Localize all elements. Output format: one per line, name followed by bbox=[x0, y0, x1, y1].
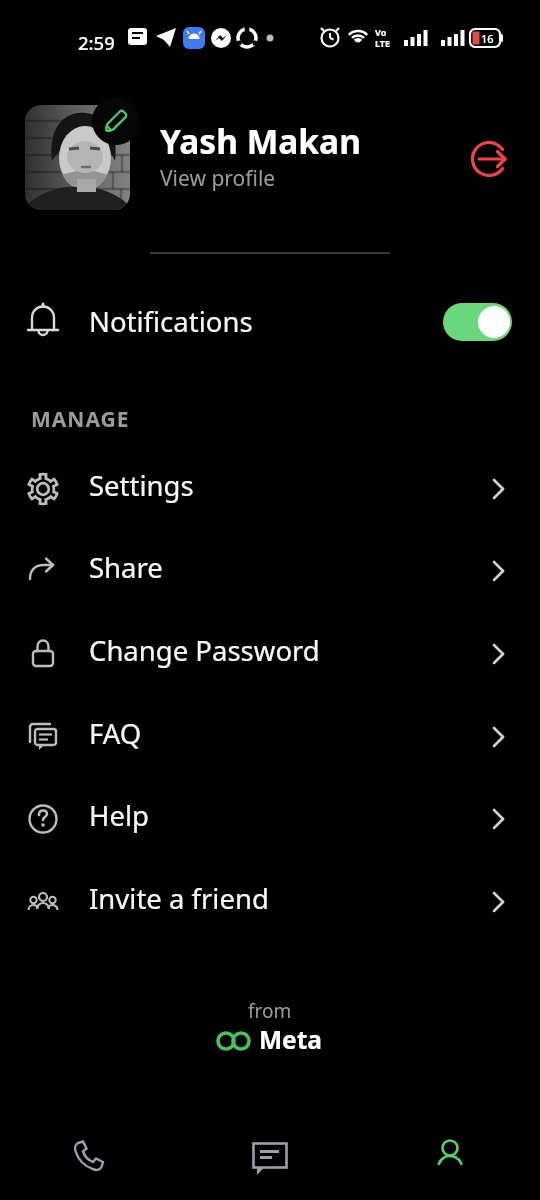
staticText: Invite a friend bbox=[89, 880, 269, 917]
staticText: Vo LTE bbox=[375, 26, 391, 49]
staticText: Change Password bbox=[89, 632, 320, 669]
staticText: View profile bbox=[160, 164, 276, 193]
button[interactable]: Settings bbox=[0, 448, 540, 531]
button[interactable]: FAQ bbox=[0, 696, 540, 779]
staticText: Settings bbox=[89, 467, 194, 504]
button[interactable] bbox=[235, 1122, 305, 1192]
staticText: Meta bbox=[259, 1023, 323, 1056]
staticText: 2:59 bbox=[78, 30, 115, 55]
button[interactable]: Help bbox=[0, 778, 540, 861]
staticText: Yash Makan bbox=[160, 118, 361, 164]
button[interactable] bbox=[55, 1122, 125, 1192]
button[interactable] bbox=[415, 1122, 485, 1192]
button[interactable] bbox=[25, 105, 130, 210]
staticText: Help bbox=[89, 797, 149, 834]
staticText: FAQ bbox=[89, 715, 142, 752]
staticText: from bbox=[248, 998, 292, 1024]
staticText: MANAGE bbox=[31, 405, 130, 434]
staticText: 16 bbox=[481, 31, 494, 46]
staticText: Share bbox=[89, 549, 163, 586]
button[interactable]: Notifications bbox=[0, 288, 540, 356]
button[interactable]: Invite a friend bbox=[0, 861, 540, 944]
button[interactable]: Change Password bbox=[0, 613, 540, 696]
staticText: Notifications bbox=[89, 303, 253, 340]
button[interactable] bbox=[443, 303, 512, 341]
button[interactable] bbox=[470, 138, 512, 180]
button[interactable]: Share bbox=[0, 530, 540, 613]
